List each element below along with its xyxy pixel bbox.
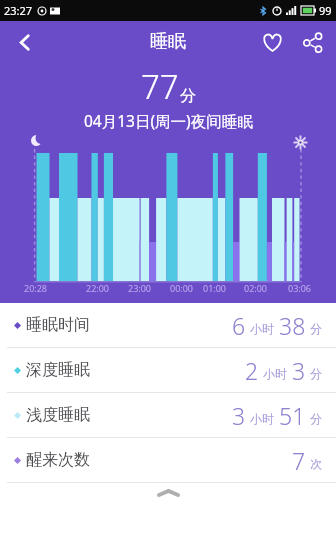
staticText: 23:00 (128, 282, 152, 294)
staticText: 醒来次数 (26, 450, 90, 470)
staticText: 7 (292, 445, 306, 476)
staticText: 3 (292, 355, 306, 386)
button[interactable]: Favorite (252, 22, 292, 62)
button[interactable]: Share (292, 22, 332, 62)
button[interactable]: Back (4, 22, 44, 62)
staticText: 睡眠时间 (26, 315, 90, 335)
staticText: 20:28 (24, 282, 48, 294)
staticText: 04月13日(周一)夜间睡眠 (84, 110, 253, 131)
staticText: 小时 (263, 366, 287, 381)
staticText: 03:06 (288, 282, 312, 294)
staticText: 38 (279, 310, 306, 341)
staticText: 浅度睡眠 (26, 405, 90, 425)
button[interactable]: 睡眠时间 (0, 303, 336, 348)
staticText: 小时 (250, 411, 274, 426)
staticText: 22:00 (86, 282, 110, 294)
staticText: 6 (232, 310, 246, 341)
staticText: 分 (180, 86, 196, 106)
staticText: 分 (310, 411, 322, 426)
staticText: 分 (310, 366, 322, 381)
staticText: 2 (245, 355, 259, 386)
button[interactable]: 浅度睡眠 (0, 393, 336, 438)
staticText: 深度睡眠 (26, 360, 90, 380)
staticText: 小时 (250, 321, 274, 336)
staticText: 00:00 (170, 282, 194, 294)
staticText: 77 (141, 64, 179, 109)
staticText: 分 (310, 321, 322, 336)
staticText: 23:27 (4, 3, 33, 18)
staticText: 51 (279, 400, 306, 431)
staticText: 01:00 (203, 282, 227, 294)
staticText: 99 (319, 3, 332, 18)
staticText: 02:00 (244, 282, 268, 294)
staticText: 睡眠 (150, 30, 186, 53)
button[interactable]: 深度睡眠 (0, 348, 336, 393)
staticText: 3 (232, 400, 246, 431)
button[interactable]: 醒来次数 (0, 438, 336, 483)
staticText: 次 (310, 456, 322, 471)
